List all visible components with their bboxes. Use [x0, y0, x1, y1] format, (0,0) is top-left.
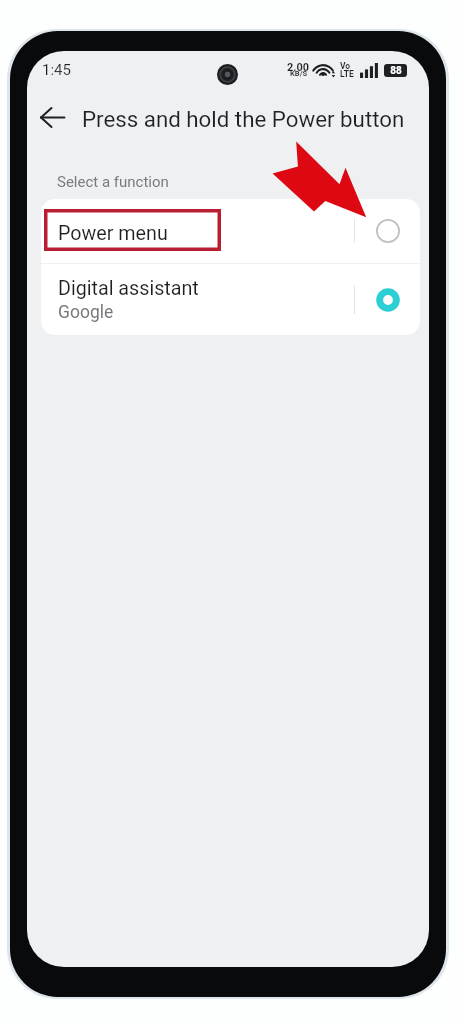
staticText: Press and hold the Power button — [82, 106, 405, 132]
button[interactable]: Power menu — [41, 199, 420, 263]
staticText: KB/S — [290, 69, 308, 78]
staticText: Vo — [340, 61, 351, 71]
staticText: 2.00 — [287, 61, 310, 74]
staticText: Digital assistant — [58, 277, 199, 300]
staticText: 1:45 — [42, 61, 71, 79]
button[interactable]: Back — [34, 98, 71, 136]
staticText: LTE — [340, 69, 354, 79]
staticText: Power menu — [58, 222, 168, 245]
button[interactable]: Select Digital assistant — [355, 264, 420, 335]
button[interactable]: Digital assistant — [41, 264, 420, 335]
button[interactable]: Select Power menu — [355, 199, 420, 263]
staticText: Select a function — [57, 173, 169, 191]
staticText: 88 — [390, 65, 402, 77]
staticText: Google — [58, 302, 114, 323]
